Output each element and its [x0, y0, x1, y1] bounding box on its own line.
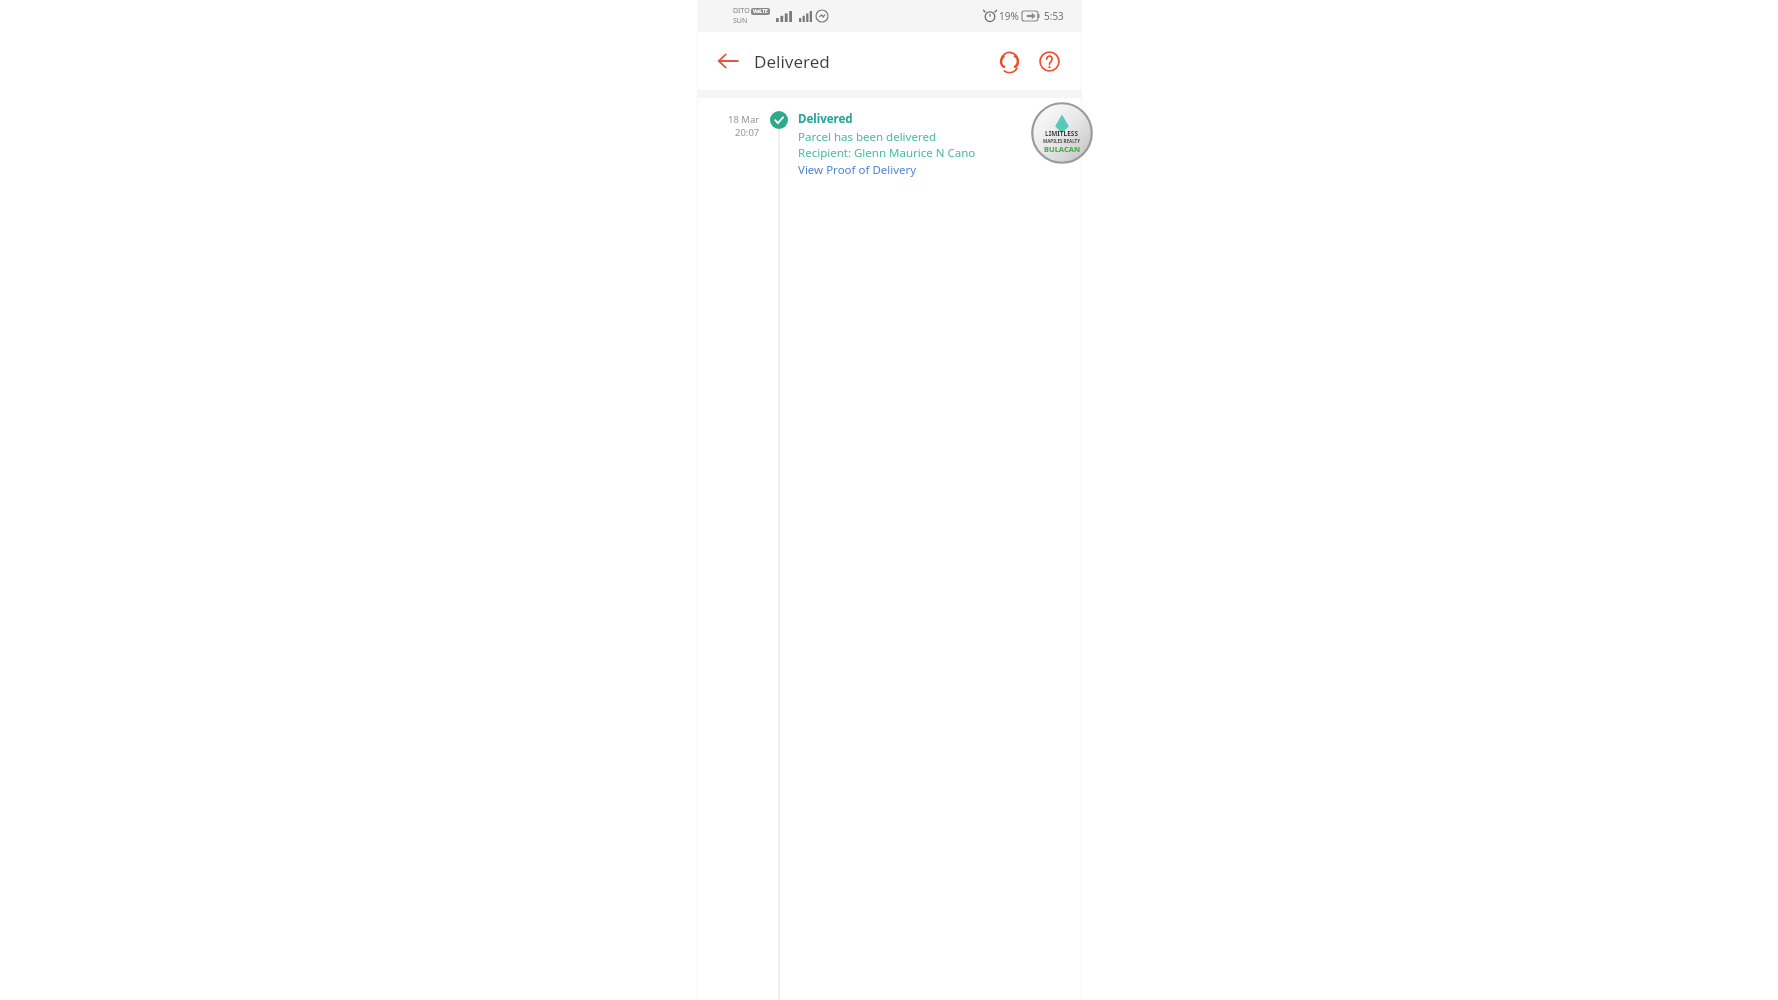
staticText: BULACAN	[1044, 144, 1080, 154]
staticText: DITO	[733, 6, 750, 16]
staticText: VoLTE	[753, 8, 768, 15]
staticText: LIMITLESS	[1045, 129, 1079, 138]
button[interactable]: Customer support	[989, 41, 1029, 81]
staticText: 5:53	[1044, 9, 1064, 23]
button[interactable]: View Proof of Delivery	[798, 162, 917, 178]
staticText: Delivered	[754, 50, 830, 73]
button[interactable]: 18 Mar	[698, 106, 1081, 1000]
staticText: 20:07	[735, 126, 760, 139]
staticText: Recipient: Glenn Maurice N Cano	[798, 145, 976, 161]
staticText: SUN	[733, 16, 748, 26]
button[interactable]: Back	[708, 41, 748, 81]
staticText: MAPILES REALTY	[1043, 138, 1081, 144]
staticText: 18 Mar	[728, 113, 760, 126]
staticText: 19%	[999, 9, 1019, 23]
staticText: Delivered	[798, 111, 853, 127]
staticText: Parcel has been delivered	[798, 129, 936, 145]
staticText: View Proof of Delivery	[798, 162, 917, 178]
button[interactable]: Help	[1029, 41, 1069, 81]
